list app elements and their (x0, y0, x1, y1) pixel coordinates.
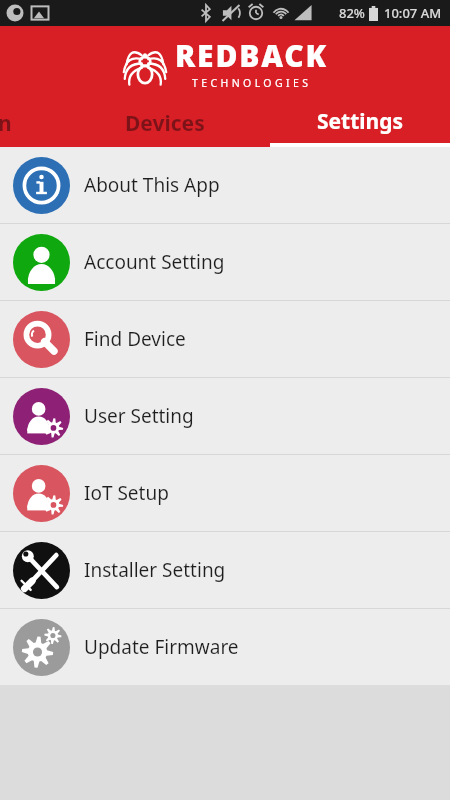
button[interactable]: Settings (270, 99, 450, 147)
other: Redback Technologies (0, 26, 450, 99)
button[interactable]: Installer Setting (0, 532, 450, 608)
button[interactable]: n (0, 99, 60, 147)
button[interactable]: Update Firmware (0, 609, 450, 685)
staticText: Installer Setting (84, 557, 226, 583)
staticText: Account Setting (84, 249, 225, 275)
button[interactable]: Find Device (0, 301, 450, 377)
staticText: 82% (339, 4, 365, 22)
staticText: n (0, 109, 12, 138)
staticText: About This App (84, 172, 220, 198)
button[interactable]: IoT Setup (0, 455, 450, 531)
staticText: Update Firmware (84, 634, 239, 660)
button[interactable]: User Setting (0, 378, 450, 454)
staticText: IoT Setup (84, 480, 169, 506)
button[interactable]: Account Setting (0, 224, 450, 300)
staticText: 10:07 AM (384, 4, 442, 22)
staticText: Find Device (84, 326, 186, 352)
staticText: Settings (317, 107, 404, 136)
button[interactable]: About This App (0, 147, 450, 223)
staticText: Devices (125, 109, 205, 138)
button[interactable]: Devices (60, 99, 270, 147)
staticText: User Setting (84, 403, 194, 429)
staticText: REDBACK (175, 35, 328, 76)
staticText: TECHNOLOGIES (192, 76, 312, 90)
